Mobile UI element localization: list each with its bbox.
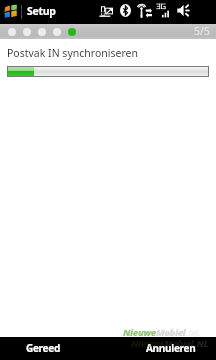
staticText: Annuleren: [146, 341, 196, 355]
staticText: Nieuwe: [131, 337, 164, 350]
staticText: Gereed: [26, 341, 60, 355]
staticText: Postvak IN synchroniseren: [7, 46, 138, 60]
button[interactable]: Gereed: [0, 337, 86, 360]
staticText: .NL: [194, 337, 209, 350]
staticText: Nieuwe: [123, 326, 156, 339]
staticText: Mobiel: [156, 326, 186, 339]
staticText: 5/5: [194, 24, 210, 38]
staticText: Mobiel: [164, 337, 194, 350]
staticText: Setup: [27, 4, 56, 18]
button[interactable]: Annuleren: [128, 337, 214, 360]
staticText: .NL: [186, 326, 201, 339]
